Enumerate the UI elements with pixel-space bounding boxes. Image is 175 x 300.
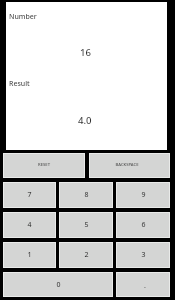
staticText: 4.0 xyxy=(78,114,92,127)
button[interactable]: 6 xyxy=(117,213,169,237)
button[interactable]: 1 xyxy=(4,243,55,267)
staticText: Result xyxy=(9,79,30,89)
staticText: RESET xyxy=(38,162,50,168)
button[interactable]: 7 xyxy=(4,183,55,207)
staticText: 3 xyxy=(141,250,146,260)
button[interactable]: BACKSPACE xyxy=(90,154,169,177)
button[interactable]: 2 xyxy=(60,243,112,267)
button[interactable]: 5 xyxy=(60,213,112,237)
staticText: BACKSPACE xyxy=(115,162,139,168)
button[interactable]: 0 xyxy=(4,273,112,296)
staticText: 8 xyxy=(84,190,89,200)
button[interactable]: RESET xyxy=(4,154,84,177)
staticText: Number xyxy=(9,12,37,22)
staticText: 1 xyxy=(27,250,32,260)
staticText: 7 xyxy=(27,190,32,200)
button[interactable]: 8 xyxy=(60,183,112,207)
staticText: 6 xyxy=(141,220,146,230)
staticText: 2 xyxy=(84,250,89,260)
staticText: 0 xyxy=(56,280,61,290)
staticText: 5 xyxy=(84,220,89,230)
button[interactable]: 3 xyxy=(117,243,169,267)
staticText: . xyxy=(144,281,146,291)
staticText: 4 xyxy=(27,220,32,230)
button[interactable]: 9 xyxy=(117,183,169,207)
staticText: 16 xyxy=(80,46,91,59)
staticText: 9 xyxy=(141,190,146,200)
button[interactable]: 4 xyxy=(4,213,55,237)
